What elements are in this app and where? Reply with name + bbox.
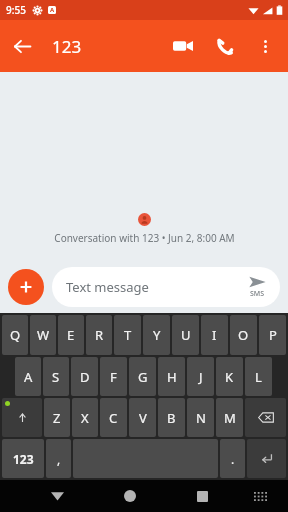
staticText: N bbox=[196, 409, 206, 427]
button[interactable]: N bbox=[187, 398, 214, 437]
button[interactable]: W bbox=[30, 315, 56, 355]
button[interactable]: T bbox=[114, 315, 141, 355]
staticText: Text message bbox=[66, 278, 149, 296]
button[interactable]: Y bbox=[143, 315, 170, 355]
button[interactable]: V bbox=[129, 398, 156, 437]
button[interactable]: Recent apps bbox=[186, 480, 218, 512]
staticText: Y bbox=[153, 326, 161, 344]
staticText: A bbox=[24, 368, 33, 386]
button[interactable]: More options bbox=[246, 27, 284, 65]
button[interactable]: Z bbox=[44, 398, 70, 437]
button[interactable]: G bbox=[129, 357, 156, 396]
button[interactable]: S bbox=[43, 357, 69, 396]
button[interactable]: Text message bbox=[52, 267, 280, 307]
staticText: B bbox=[167, 409, 176, 427]
staticText: E bbox=[67, 326, 75, 344]
staticText: K bbox=[225, 368, 234, 386]
staticText: S bbox=[52, 368, 60, 386]
button[interactable]: M bbox=[216, 398, 243, 437]
button[interactable]: D bbox=[71, 357, 98, 396]
button[interactable]: Shift bbox=[2, 398, 42, 437]
staticText: D bbox=[80, 368, 90, 386]
button[interactable]: I bbox=[201, 315, 228, 355]
button[interactable]: Back bbox=[0, 24, 44, 68]
button[interactable]: O bbox=[230, 315, 257, 355]
staticText: A bbox=[50, 6, 55, 14]
staticText: J bbox=[199, 368, 203, 386]
staticText: O bbox=[238, 326, 249, 344]
staticText: Z bbox=[53, 409, 61, 427]
staticText: L bbox=[255, 368, 262, 386]
button[interactable]: X bbox=[72, 398, 98, 437]
button[interactable]: R bbox=[86, 315, 112, 355]
button[interactable]: Add attachment bbox=[8, 269, 44, 305]
button[interactable]: Q bbox=[2, 315, 28, 355]
staticText: M bbox=[224, 409, 236, 427]
staticText: F bbox=[110, 368, 117, 386]
button[interactable]: P bbox=[259, 315, 286, 355]
button[interactable]: , bbox=[46, 439, 71, 478]
button[interactable]: Backspace bbox=[245, 398, 286, 437]
button[interactable]: L bbox=[245, 357, 272, 396]
staticText: 9:55 bbox=[6, 3, 26, 17]
button[interactable]: C bbox=[100, 398, 127, 437]
staticText: X bbox=[81, 409, 89, 427]
staticText: T bbox=[124, 326, 132, 344]
staticText: 123 bbox=[13, 451, 34, 467]
button[interactable]: 123 bbox=[2, 439, 44, 478]
staticText: 123 bbox=[52, 35, 82, 58]
button[interactable]: F bbox=[100, 357, 127, 396]
button[interactable]: Back bbox=[41, 480, 73, 512]
staticText: W bbox=[37, 326, 50, 344]
staticText: SMS bbox=[250, 289, 265, 299]
button[interactable]: J bbox=[187, 357, 214, 396]
button[interactable]: H bbox=[158, 357, 185, 396]
staticText: H bbox=[167, 368, 177, 386]
button[interactable]: Video call bbox=[162, 25, 204, 67]
staticText: Conversation with 123 • Jun 2, 8:00 AM bbox=[54, 231, 235, 245]
staticText: C bbox=[109, 409, 118, 427]
staticText: V bbox=[139, 409, 147, 427]
button[interactable]: K bbox=[216, 357, 243, 396]
button[interactable]: Home bbox=[114, 480, 146, 512]
staticText: I bbox=[212, 326, 217, 344]
button[interactable]: A bbox=[15, 357, 41, 396]
button[interactable]: Enter bbox=[247, 439, 286, 478]
staticText: . bbox=[231, 451, 235, 467]
button[interactable]: B bbox=[158, 398, 185, 437]
staticText: U bbox=[181, 326, 191, 344]
button[interactable]: Send SMS bbox=[236, 267, 278, 307]
button[interactable]: U bbox=[172, 315, 199, 355]
staticText: R bbox=[95, 326, 104, 344]
staticText: G bbox=[138, 368, 148, 386]
staticText: , bbox=[57, 451, 61, 467]
button[interactable]: . bbox=[220, 439, 245, 478]
staticText: P bbox=[269, 326, 277, 344]
button[interactable]: Switch keyboard bbox=[246, 482, 274, 510]
button[interactable]: Call bbox=[204, 25, 246, 67]
staticText: Q bbox=[10, 326, 21, 344]
button[interactable]: E bbox=[58, 315, 84, 355]
